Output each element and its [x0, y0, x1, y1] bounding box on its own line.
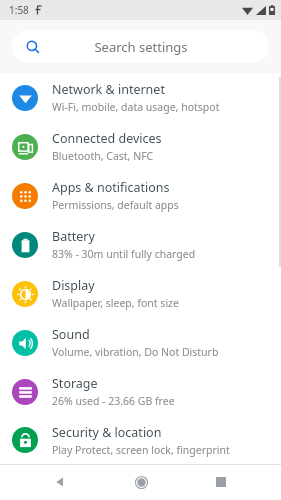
staticText: Bluetooth, Cast, NFC [52, 149, 154, 163]
staticText: Play Protect, screen lock, fingerprint [52, 443, 230, 457]
staticText: 83% - 30m until fully charged [52, 247, 196, 261]
button[interactable]: Storage [0, 367, 281, 416]
button[interactable]: Search settings [12, 30, 269, 63]
staticText: Battery [52, 228, 95, 245]
staticText: Volume, vibration, Do Not Disturb [52, 345, 219, 359]
button[interactable]: Apps & notifications [0, 171, 281, 220]
staticText: Display [52, 277, 95, 294]
staticText: Sound [52, 326, 90, 343]
staticText: Security & location [52, 424, 162, 441]
staticText: Wallpaper, sleep, font size [52, 296, 179, 310]
button[interactable]: Back [40, 464, 80, 500]
staticText: Search settings [94, 38, 188, 56]
staticText: Apps & notifications [52, 179, 170, 196]
staticText: 1:58 [9, 3, 29, 17]
staticText: Permissions, default apps [52, 198, 179, 212]
staticText: Network & internet [52, 81, 165, 98]
button[interactable]: Recent apps [201, 464, 241, 500]
staticText: Connected devices [52, 130, 162, 147]
staticText: 26% used - 23.66 GB free [52, 394, 175, 408]
button[interactable]: Sound [0, 318, 281, 367]
button[interactable]: Battery [0, 220, 281, 269]
staticText: Storage [52, 375, 98, 392]
button[interactable]: Connected devices [0, 122, 281, 171]
button[interactable]: Network & internet [0, 73, 281, 122]
staticText: Wi-Fi, mobile, data usage, hotspot [52, 100, 220, 114]
button[interactable]: Home [121, 464, 161, 500]
button[interactable]: Display [0, 269, 281, 318]
button[interactable]: Security & location [0, 416, 281, 464]
